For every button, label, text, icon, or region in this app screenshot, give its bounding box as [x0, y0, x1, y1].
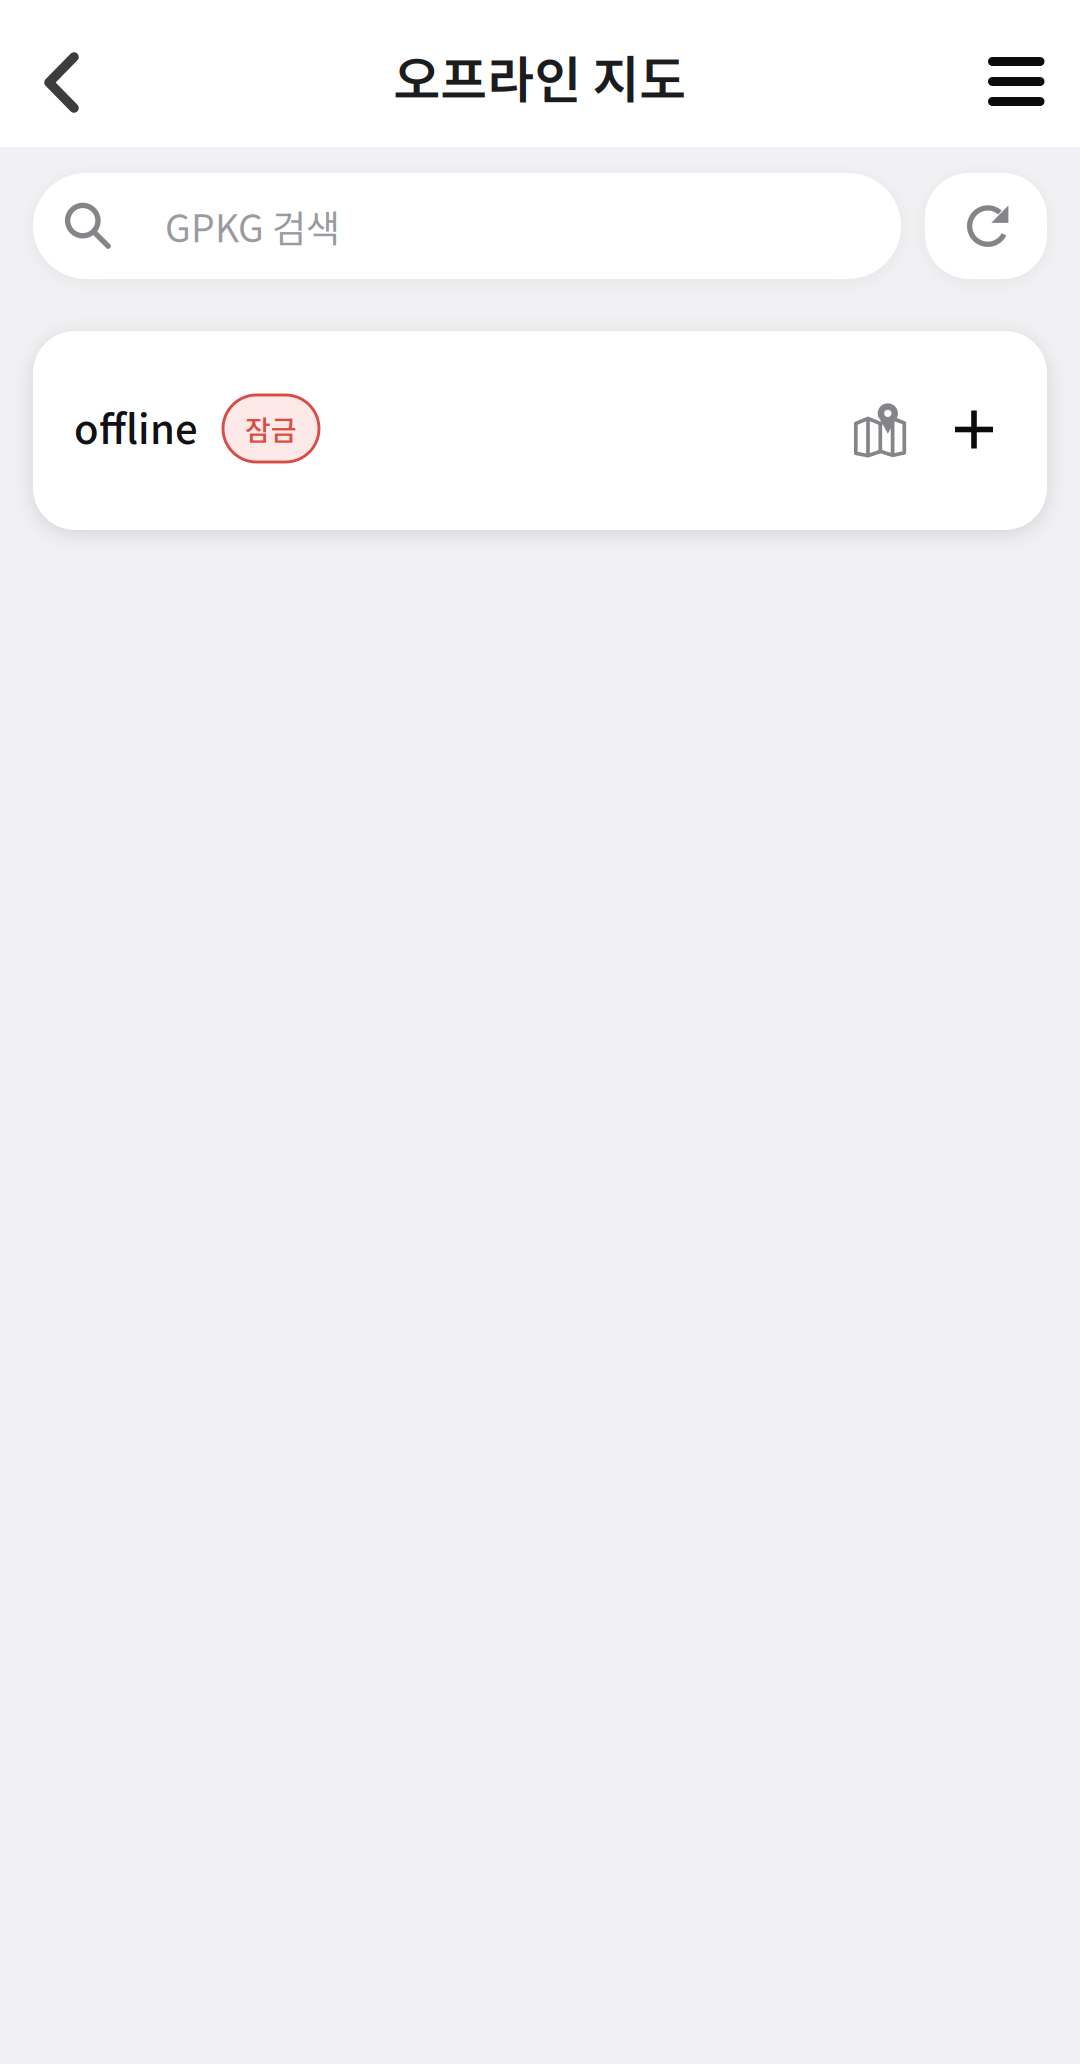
staticText: 잠금 [245, 408, 297, 449]
button[interactable]: Back [10, 17, 113, 147]
button[interactable]: GPKG 검색 [33, 173, 901, 279]
button[interactable]: Menu [965, 16, 1068, 146]
button[interactable]: Show on map [832, 365, 927, 495]
staticText: GPKG 검색 [165, 199, 340, 253]
staticText: offline [74, 397, 198, 455]
button[interactable]: offline [33, 331, 1047, 530]
button[interactable]: Add [928, 364, 1020, 494]
staticText: 오프라인 지도 [393, 40, 686, 113]
button[interactable]: Refresh [925, 173, 1047, 279]
